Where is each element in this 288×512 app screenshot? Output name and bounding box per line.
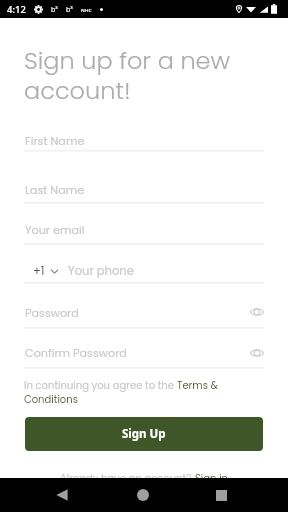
staticText: 4:12: [7, 3, 26, 16]
button[interactable]: Your email: [24, 215, 264, 237]
button[interactable]: Show password: [246, 342, 268, 364]
staticText: ɴʜᴄ: [81, 6, 92, 14]
button[interactable]: Terms &: [177, 378, 218, 392]
button[interactable]: Last Name: [24, 175, 264, 197]
staticText: Last Name: [25, 182, 85, 198]
staticText: Already have an account?: [60, 471, 195, 485]
button[interactable]: Back: [45, 478, 79, 512]
button[interactable]: Show password: [246, 301, 268, 323]
staticText: Sign in: [195, 471, 229, 485]
staticText: Sign up for a new account!: [24, 44, 274, 107]
staticText: In continuing you agree to the: [24, 378, 177, 392]
button[interactable]: Conditions: [24, 392, 78, 406]
button[interactable]: First Name: [24, 126, 264, 148]
staticText: Your phone: [68, 263, 134, 279]
staticText: Conditions: [24, 392, 78, 406]
button[interactable]: Home: [126, 478, 160, 512]
button[interactable]: Password: [24, 298, 264, 320]
button[interactable]: Already have an account?: [60, 471, 229, 485]
staticText: Password: [25, 305, 79, 321]
staticText: b³: [66, 5, 73, 15]
staticText: Sign Up: [122, 426, 166, 442]
staticText: b³: [51, 5, 58, 15]
staticText: Your email: [25, 222, 85, 238]
button[interactable]: Sign Up: [25, 417, 263, 451]
button[interactable]: Recent apps: [204, 478, 238, 512]
staticText: Confirm Password: [25, 345, 127, 361]
staticText: First Name: [25, 133, 85, 149]
button[interactable]: Confirm Password: [24, 338, 264, 360]
staticText: +1: [33, 263, 45, 279]
